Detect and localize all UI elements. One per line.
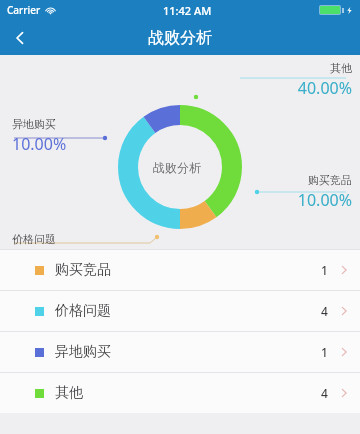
- staticText: 10.00%: [297, 189, 352, 211]
- button[interactable]: 异地购买: [0, 332, 360, 372]
- staticText: 购买竞品: [308, 173, 352, 187]
- staticText: 4: [321, 385, 328, 401]
- staticText: 40.00%: [12, 248, 67, 270]
- button[interactable]: 购买竞品: [0, 250, 360, 290]
- staticText: 战败分析: [153, 160, 201, 175]
- staticText: 异地购买: [12, 117, 56, 131]
- staticText: 40.00%: [297, 77, 352, 99]
- staticText: 11:42 AM: [163, 3, 212, 18]
- button[interactable]: Back: [0, 20, 40, 55]
- staticText: 其他: [55, 384, 83, 402]
- staticText: 价格问题: [12, 232, 56, 246]
- staticText: 战败分析: [148, 28, 212, 48]
- staticText: 异地购买: [55, 343, 111, 361]
- staticText: Carrier: [7, 3, 41, 17]
- button[interactable]: 价格问题: [0, 291, 360, 331]
- staticText: 其他: [330, 61, 352, 75]
- button[interactable]: 其他: [0, 373, 360, 413]
- staticText: 1: [321, 262, 328, 278]
- staticText: 4: [321, 303, 328, 319]
- staticText: 购买竞品: [55, 261, 111, 279]
- staticText: 1: [321, 344, 328, 360]
- staticText: 价格问题: [55, 302, 111, 320]
- staticText: 10.00%: [12, 133, 67, 155]
